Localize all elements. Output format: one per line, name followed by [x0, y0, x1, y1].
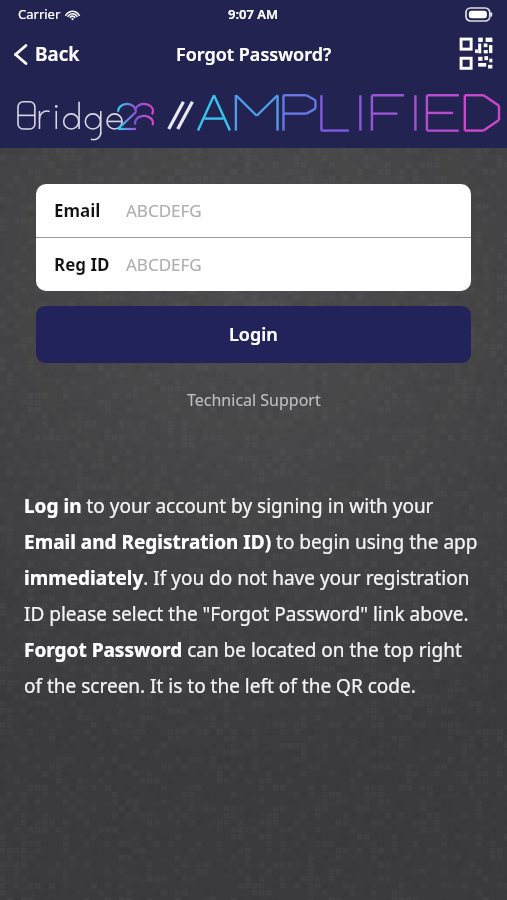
button[interactable]: Technical Support: [175, 385, 333, 415]
button[interactable]: Reg ID: [36, 238, 471, 291]
staticText: Forgot Password?: [176, 42, 332, 67]
button[interactable]: Back: [0, 35, 90, 73]
staticText: 9:07 AM: [228, 5, 279, 23]
button[interactable]: Login: [36, 306, 471, 363]
staticText: Technical Support: [187, 389, 321, 411]
staticText: Log in to your account by signing in wit…: [24, 493, 483, 699]
staticText: Back: [35, 41, 80, 67]
button[interactable]: Scan QR code: [459, 37, 493, 71]
staticText: Login: [229, 322, 278, 347]
button[interactable]: Email: [36, 184, 471, 237]
staticText: ABCDEFG: [126, 253, 202, 276]
staticText: ABCDEFG: [126, 199, 202, 222]
staticText: Carrier: [18, 5, 61, 23]
staticText: Reg ID: [54, 253, 110, 276]
staticText: Email: [54, 199, 101, 222]
button[interactable]: Forgot Password?: [170, 36, 338, 73]
